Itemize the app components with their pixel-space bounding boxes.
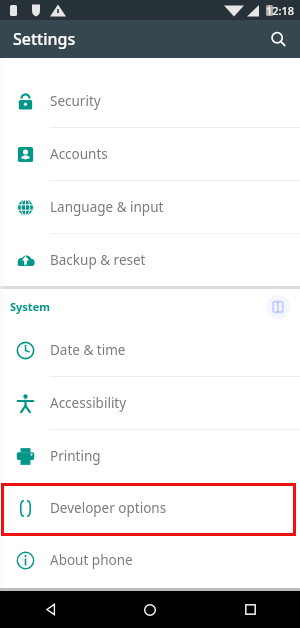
button[interactable]: Security: [0, 75, 300, 127]
staticText: Developer options: [50, 499, 167, 517]
button[interactable]: Recent apps: [227, 591, 273, 628]
button[interactable]: Date & time: [0, 324, 300, 376]
button[interactable]: Developer options: [0, 482, 300, 534]
button[interactable]: Accessibility: [0, 377, 300, 429]
button[interactable]: Accounts: [0, 128, 300, 180]
staticText: Backup & reset: [50, 251, 146, 269]
button[interactable]: Home: [127, 591, 173, 628]
button[interactable]: Backup & reset: [0, 234, 300, 286]
button[interactable]: Language & input: [0, 181, 300, 233]
staticText: Printing: [50, 447, 101, 465]
button[interactable]: About phone: [0, 534, 300, 586]
staticText: Accounts: [50, 145, 108, 163]
staticText: Language & input: [50, 198, 164, 216]
staticText: System: [10, 299, 50, 314]
staticText: Date & time: [50, 341, 126, 359]
staticText: 12:18: [266, 3, 295, 18]
staticText: Security: [50, 92, 101, 110]
staticText: Settings: [13, 28, 76, 50]
staticText: Accessibility: [50, 394, 127, 412]
button[interactable]: Printing: [0, 430, 300, 482]
button[interactable]: Back: [27, 591, 73, 628]
staticText: About phone: [50, 551, 133, 569]
button[interactable]: Search: [262, 23, 294, 55]
